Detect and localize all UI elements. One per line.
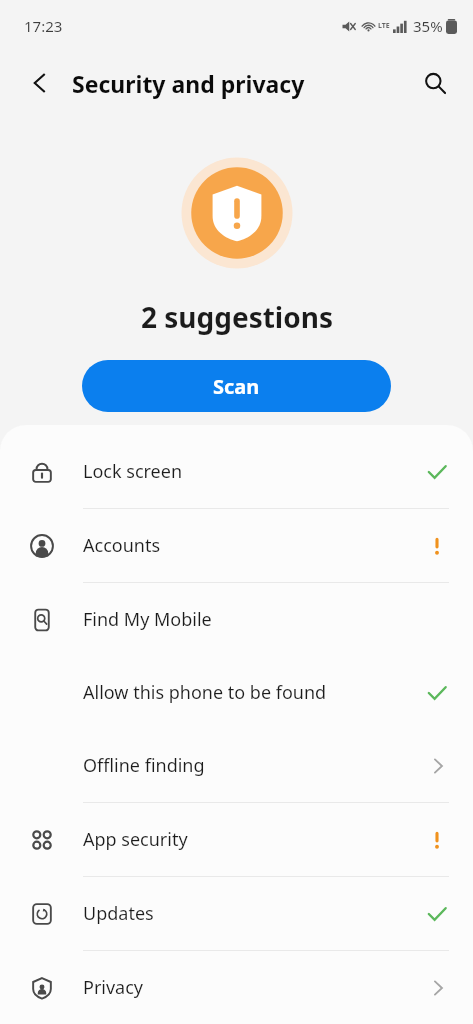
button[interactable]: App security <box>0 803 473 876</box>
staticText: Scan <box>213 373 260 400</box>
button[interactable]: Back <box>16 59 64 107</box>
button[interactable]: Privacy <box>0 951 473 1024</box>
staticText: Lock screen <box>83 459 183 484</box>
staticText: Allow this phone to be found <box>83 680 327 705</box>
staticText: 2 suggestions <box>141 298 333 336</box>
button[interactable]: Updates <box>0 877 473 950</box>
button[interactable]: Accounts <box>0 509 473 582</box>
staticText: Updates <box>83 901 154 926</box>
staticText: Find My Mobile <box>83 607 212 632</box>
button[interactable]: Find My Mobile <box>0 583 473 656</box>
staticText: Accounts <box>83 533 161 558</box>
staticText: App security <box>83 827 188 852</box>
button[interactable]: Scan <box>82 360 391 412</box>
staticText: 35% <box>413 16 443 36</box>
button[interactable]: Lock screen <box>0 435 473 508</box>
staticText: LTE <box>378 21 390 31</box>
button[interactable]: Search <box>411 59 459 107</box>
staticText: 17:23 <box>24 16 63 36</box>
staticText: Security and privacy <box>72 68 305 99</box>
staticText: Privacy <box>83 975 144 1000</box>
button[interactable]: Offline finding <box>0 729 473 802</box>
button[interactable]: Allow this phone to be found <box>0 656 473 729</box>
staticText: Offline finding <box>83 753 205 778</box>
